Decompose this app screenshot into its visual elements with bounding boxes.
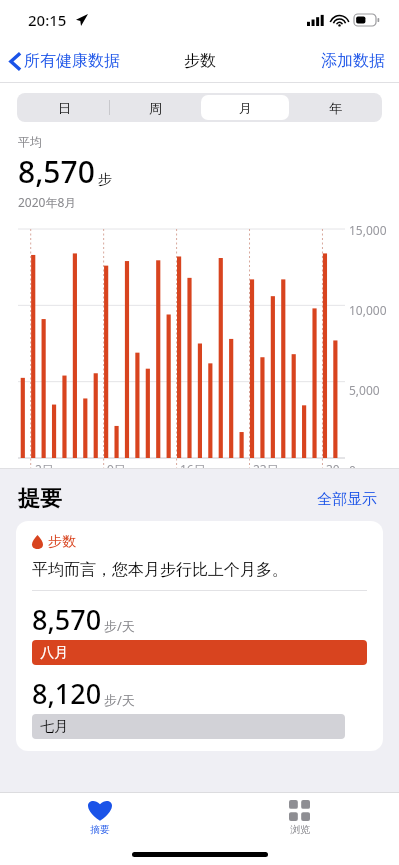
staticText: 20:15 xyxy=(28,10,67,30)
staticText: 23日 xyxy=(253,461,279,468)
staticText: 步/天 xyxy=(104,691,135,709)
button[interactable]: 添加数据 xyxy=(307,45,399,77)
staticText: 8,120 xyxy=(32,675,102,712)
staticText: 步数 xyxy=(48,533,76,551)
staticText: 七月 xyxy=(40,718,68,736)
button[interactable]: 全部显示 xyxy=(313,486,381,513)
button[interactable]: 步数 xyxy=(16,521,383,751)
staticText: 16日 xyxy=(180,461,206,468)
staticText: 0 xyxy=(349,462,356,468)
button[interactable]: 周 xyxy=(111,95,199,120)
staticText: 15,000 xyxy=(349,222,387,238)
staticText: 步/天 xyxy=(104,617,135,635)
staticText: 平均 xyxy=(18,134,42,149)
staticText: 所有健康数据 xyxy=(24,51,120,71)
staticText: 摘要 xyxy=(90,823,110,836)
staticText: 平均而言，您本月步行比上个月多。 xyxy=(32,560,288,580)
button[interactable]: 所有健康数据 xyxy=(0,45,128,77)
button[interactable]: 年 xyxy=(291,95,379,120)
staticText: 年 xyxy=(329,100,342,116)
button[interactable]: 月 xyxy=(201,95,289,120)
staticText: 5,000 xyxy=(349,382,380,398)
staticText: 9日 xyxy=(107,461,126,468)
staticText: 2日 xyxy=(35,461,54,468)
staticText: 30 xyxy=(326,461,340,468)
staticText: 月 xyxy=(239,100,252,116)
button[interactable]: 摘要 xyxy=(64,796,136,840)
staticText: 步 xyxy=(98,171,112,189)
staticText: 周 xyxy=(149,100,162,116)
staticText: 浏览 xyxy=(290,823,310,836)
staticText: 2020年8月 xyxy=(18,194,77,210)
button[interactable]: 浏览 xyxy=(265,796,334,840)
staticText: 10,000 xyxy=(349,302,387,318)
staticText: 8,570 xyxy=(32,601,102,638)
staticText: 提要 xyxy=(18,485,62,513)
staticText: 八月 xyxy=(40,644,68,662)
staticText: 步数 xyxy=(184,51,216,71)
button[interactable]: 日 xyxy=(20,95,108,120)
staticText: 日 xyxy=(58,100,71,116)
staticText: 8,570 xyxy=(18,151,95,192)
